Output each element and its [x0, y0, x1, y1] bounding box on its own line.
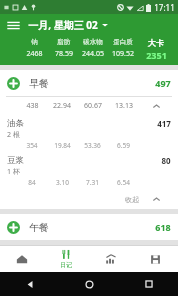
staticText: 109.52	[112, 49, 134, 59]
staticText: 618	[155, 221, 171, 233]
staticText: 油条	[7, 118, 24, 129]
staticText: 日记	[60, 261, 72, 269]
staticText: 6.59	[117, 141, 130, 150]
staticText: 60.67	[84, 101, 102, 111]
button[interactable]: Open navigation menu	[4, 16, 22, 34]
staticText: 一月, 星期三 02	[28, 18, 98, 32]
staticText: 497	[155, 77, 171, 89]
staticText: 84	[28, 178, 36, 187]
staticText: 80	[161, 155, 171, 166]
staticText: 2 根	[7, 130, 20, 140]
button[interactable]: Saved	[133, 246, 178, 272]
button[interactable]: 午餐	[0, 214, 178, 240]
staticText: 438	[26, 101, 39, 111]
button[interactable]: 日记	[44, 246, 88, 272]
staticText: 6.54	[117, 178, 130, 187]
staticText: 2468	[26, 49, 43, 59]
button[interactable]: Home	[0, 246, 44, 272]
staticText: 244.05	[82, 49, 104, 59]
staticText: 早餐	[29, 77, 49, 90]
staticText: 碳水物	[83, 38, 103, 46]
staticText: 午餐	[29, 221, 49, 234]
staticText: 收起	[125, 195, 139, 204]
staticText: 大卡	[148, 38, 164, 48]
button[interactable]: 收起	[0, 189, 178, 209]
staticText: 豆浆	[7, 155, 24, 166]
staticText: 22.94	[53, 101, 71, 111]
staticText: 7.31	[86, 178, 99, 187]
staticText: 354	[26, 141, 38, 150]
button[interactable]: 豆浆	[0, 152, 178, 189]
button[interactable]: 438	[0, 97, 178, 115]
button[interactable]: 油条	[0, 115, 178, 152]
button[interactable]: 一月, 星期三 02	[28, 18, 108, 32]
staticText: 19.84	[54, 141, 71, 150]
staticText: 3.10	[56, 178, 69, 187]
staticText: 蛋白质	[113, 38, 133, 46]
button[interactable]: Statistics	[88, 246, 133, 272]
staticText: 2351	[146, 49, 167, 61]
staticText: 13.13	[115, 101, 133, 111]
staticText: 1 杯	[7, 167, 20, 177]
staticText: 钠	[31, 38, 38, 46]
button[interactable]: 早餐	[0, 70, 178, 96]
staticText: 417	[157, 118, 171, 129]
staticText: 脂肪	[57, 38, 70, 46]
staticText: 53.36	[84, 141, 101, 150]
staticText: 17:11	[154, 2, 175, 13]
staticText: 78.59	[55, 49, 73, 59]
